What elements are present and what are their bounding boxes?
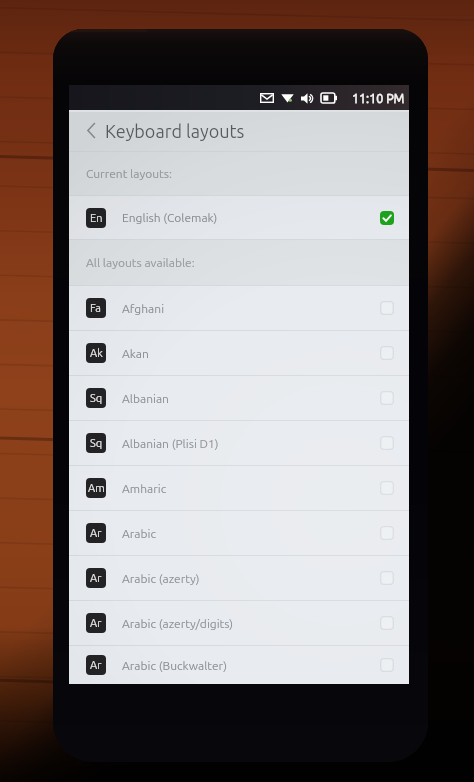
staticText: Fa xyxy=(90,302,102,314)
button[interactable]: Am xyxy=(69,466,409,510)
staticText: Ar xyxy=(90,527,102,539)
staticText: Ak xyxy=(90,347,103,359)
staticText: Albanian (Plisi D1) xyxy=(122,437,219,450)
staticText: Sq xyxy=(90,392,103,404)
staticText: Keyboard layouts xyxy=(105,121,245,141)
button[interactable]: Ak xyxy=(69,331,409,375)
staticText: English (Colemak) xyxy=(122,211,218,224)
staticText: En xyxy=(90,212,103,224)
staticText: Akan xyxy=(122,347,149,360)
button[interactable]: Ar xyxy=(69,601,409,645)
staticText: Arabic xyxy=(122,527,157,540)
staticText: Ar xyxy=(90,659,102,671)
staticText: Albanian xyxy=(122,392,169,405)
staticText: 11:10 PM xyxy=(352,91,405,105)
staticText: Am xyxy=(88,482,105,494)
button[interactable]: Sq xyxy=(69,376,409,420)
button[interactable]: Fa xyxy=(69,286,409,330)
staticText: Amharic xyxy=(122,482,167,495)
button[interactable]: Ar xyxy=(69,646,409,684)
staticText: Arabic (azerty) xyxy=(122,572,200,585)
button[interactable]: En xyxy=(69,196,409,239)
staticText: All layouts available: xyxy=(86,256,195,269)
button[interactable]: Sq xyxy=(69,421,409,465)
staticText: Arabic (Buckwalter) xyxy=(122,659,227,672)
staticText: Ar xyxy=(90,617,102,629)
staticText: Current layouts: xyxy=(86,167,172,180)
staticText: Sq xyxy=(90,437,103,449)
staticText: Arabic (azerty/digits) xyxy=(122,617,234,630)
staticText: Ar xyxy=(90,572,102,584)
button[interactable]: Ar xyxy=(69,556,409,600)
button[interactable]: Back xyxy=(69,110,409,151)
button[interactable]: Ar xyxy=(69,511,409,555)
staticText: Afghani xyxy=(122,302,165,315)
